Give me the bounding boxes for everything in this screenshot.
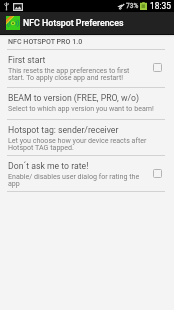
staticText: Hotspot tag: sender/receiver [8, 125, 119, 135]
button[interactable]: Toggle Don´t ask me to rate! [147, 163, 167, 183]
staticText: BEAM to version (FREE, PRO, w/o) [8, 93, 140, 103]
staticText: This resets the app preferences to first… [8, 66, 143, 82]
staticText: 73% [126, 2, 139, 10]
staticText: Select to which app version you want to … [8, 104, 154, 112]
button[interactable]: BEAM to version (FREE, PRO, w/o) [0, 88, 174, 119]
staticText: 18:35 [150, 1, 171, 11]
staticText: Let you choose how your device reacts af… [8, 136, 159, 152]
staticText: First start [8, 55, 46, 65]
staticText: NFC Hotspot Preferences [23, 18, 124, 28]
button[interactable]: Don´t ask me to rate! [0, 156, 174, 191]
button[interactable]: First start [0, 50, 174, 87]
staticText: NFC HOTSPOT PRO 1.0 [8, 37, 83, 45]
staticText: Don´t ask me to rate! [8, 161, 89, 171]
button[interactable]: Hotspot tag: sender/receiver [0, 120, 174, 155]
staticText: Enable/ disables user dialog for rating … [8, 172, 143, 188]
button[interactable]: Toggle First start [147, 57, 167, 77]
